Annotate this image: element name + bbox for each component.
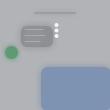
button[interactable]: More actions bbox=[49, 19, 63, 41]
